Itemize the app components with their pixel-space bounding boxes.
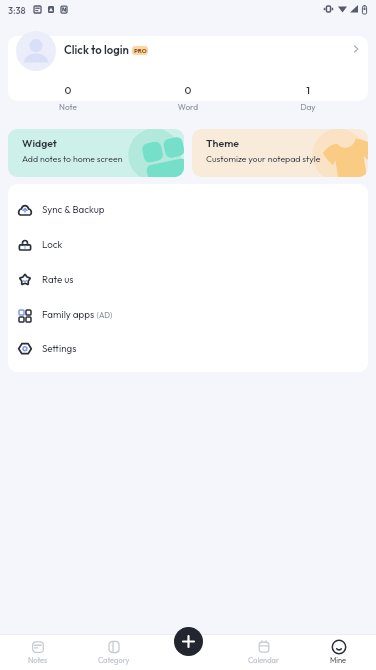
button[interactable]: Mine xyxy=(301,634,376,670)
button[interactable]: Sync & Backup xyxy=(8,191,368,226)
button[interactable]: Theme xyxy=(192,129,368,177)
staticText: Word xyxy=(128,102,248,112)
button[interactable]: Calendar xyxy=(226,634,301,670)
button[interactable]: Category xyxy=(76,634,151,670)
staticText: Mine xyxy=(330,655,347,664)
staticText: Customize your notepad style xyxy=(206,153,321,164)
staticText: 3:38 xyxy=(8,5,26,17)
staticText: Category xyxy=(98,655,130,664)
button[interactable]: Click to login xyxy=(8,36,368,101)
button[interactable]: Lock xyxy=(8,226,368,261)
staticText: 1 xyxy=(248,83,368,96)
staticText: Click to login xyxy=(64,43,129,57)
staticText: Widget xyxy=(22,136,57,149)
staticText: Lock xyxy=(42,238,63,250)
staticText: Rate us xyxy=(42,273,74,285)
staticText: Add notes to home screen xyxy=(22,153,123,164)
staticText: Calendar xyxy=(248,655,280,664)
staticText: Family apps xyxy=(42,308,95,320)
button[interactable]: Settings xyxy=(8,331,368,365)
staticText: Sync & Backup xyxy=(42,203,105,215)
staticText: 0 xyxy=(8,83,128,96)
button[interactable]: Widget xyxy=(8,129,184,177)
staticText: Settings xyxy=(42,342,77,354)
staticText: (AD) xyxy=(95,310,113,320)
staticText: 0 xyxy=(128,83,248,96)
button[interactable]: Add note xyxy=(174,627,203,656)
staticText: Theme xyxy=(206,136,239,149)
staticText: PRO xyxy=(134,47,147,55)
staticText: Note xyxy=(8,102,128,112)
button[interactable]: Family apps xyxy=(8,296,368,331)
button[interactable]: Notes xyxy=(0,634,76,670)
button[interactable]: Rate us xyxy=(8,261,368,296)
staticText: Day xyxy=(248,102,368,112)
staticText: Notes xyxy=(28,655,48,664)
